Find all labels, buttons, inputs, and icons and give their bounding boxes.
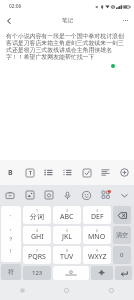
staticText: 5 — [66, 228, 69, 233]
staticText: 1 — [36, 208, 39, 213]
staticText: B — [8, 168, 13, 178]
button[interactable]: More tools — [96, 185, 115, 205]
button[interactable]: 符 — [1, 264, 21, 280]
button[interactable]: Switch input method — [91, 266, 113, 280]
staticText: 0 — [120, 251, 124, 259]
button[interactable]: 123 — [23, 266, 51, 280]
staticText: 2 — [66, 208, 69, 213]
button[interactable]: 0 — [113, 246, 131, 264]
staticText: 7 — [36, 248, 39, 253]
button[interactable]: Bulleted list — [39, 160, 58, 185]
staticText: GHI — [31, 232, 44, 242]
button[interactable]: 清空 — [113, 226, 131, 244]
button[interactable]: Home — [44, 280, 89, 300]
staticText: 符 — [8, 268, 14, 276]
button[interactable]: Voice input — [58, 185, 77, 205]
staticText: 8 — [66, 248, 69, 253]
button[interactable]: 4 — [23, 226, 51, 244]
button[interactable]: 8 — [53, 246, 81, 264]
button[interactable]: ' — [1, 206, 21, 262]
button[interactable]: Bold — [0, 160, 20, 185]
button[interactable]: Hide keyboard — [115, 185, 134, 205]
button[interactable]: Back — [0, 12, 18, 29]
staticText: 9 — [96, 248, 99, 253]
button[interactable]: Back — [89, 280, 134, 300]
button[interactable]: Backspace — [113, 206, 131, 224]
staticText: MNO — [88, 232, 106, 242]
button[interactable]: Checklist — [77, 160, 96, 185]
staticText: TUV — [60, 252, 74, 262]
staticText: 4 — [36, 228, 39, 233]
button[interactable]: Alignment — [96, 160, 115, 185]
button[interactable]: Numbered list — [58, 160, 77, 185]
button[interactable]: 6 — [83, 226, 111, 244]
staticText: 清空 — [116, 231, 128, 239]
staticText: 笔记 — [62, 17, 73, 24]
button[interactable]: 2 — [53, 206, 81, 224]
staticText: ABC — [60, 212, 74, 222]
staticText: PQRS — [28, 252, 46, 262]
button[interactable]: Reminder — [0, 185, 20, 205]
staticText: DEF — [91, 212, 104, 222]
button[interactable]: Enter — [115, 266, 132, 280]
staticText: 3 — [96, 208, 99, 213]
button[interactable]: Scan — [39, 185, 58, 205]
staticText: ？ — [8, 236, 14, 243]
button[interactable]: More options — [116, 12, 134, 29]
staticText: 123 — [32, 269, 43, 277]
button[interactable]: Insert — [115, 160, 134, 185]
staticText: ' — [10, 213, 12, 220]
button[interactable]: Text style — [20, 160, 39, 185]
button[interactable]: Recents — [0, 280, 44, 300]
button[interactable]: Emoji — [77, 185, 96, 205]
button[interactable]: 1 — [23, 206, 51, 224]
button[interactable]: 3 — [83, 206, 111, 224]
staticText: 分词 — [30, 212, 44, 221]
staticText: ！ — [8, 248, 14, 255]
button[interactable]: 7 — [23, 246, 51, 264]
button[interactable]: Image — [20, 185, 39, 205]
staticText: WXYZ — [88, 252, 107, 262]
staticText: JKL — [62, 232, 72, 242]
button[interactable]: 9 — [83, 246, 111, 264]
button[interactable]: 5 — [53, 226, 81, 244]
button[interactable]: Space — [53, 266, 89, 280]
staticText: 02:06 — [9, 3, 22, 10]
staticText: ， — [8, 225, 14, 232]
staticText: T — [29, 170, 32, 177]
staticText: 6 — [96, 228, 99, 233]
staticText: 有个小说内容有一段是一个国中拳对枕讨浪创客话是刀客店来箱主角虚剑三式敦镇来一剑三… — [6, 32, 125, 61]
